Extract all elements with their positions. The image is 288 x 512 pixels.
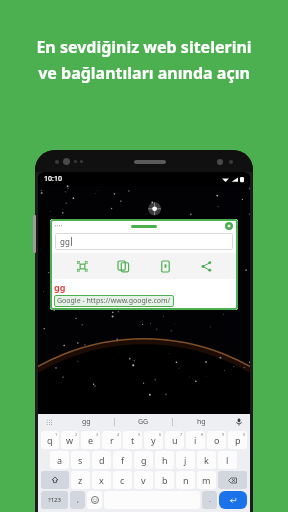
staticText: m: [202, 474, 211, 486]
staticText: gg: [54, 281, 66, 293]
staticText: y: [151, 434, 156, 446]
button[interactable]: h: [155, 451, 174, 469]
button[interactable]: hg: [173, 414, 230, 430]
staticText: u: [172, 434, 178, 446]
button[interactable]: z: [71, 471, 90, 489]
button[interactable]: m: [197, 471, 216, 489]
button[interactable]: gg: [55, 233, 233, 250]
staticText: v: [141, 474, 146, 486]
button[interactable]: QR code: [73, 257, 91, 275]
staticText: ve bağlantıları anında açın: [14, 62, 274, 84]
staticText: 5: [138, 432, 141, 437]
staticText: GG: [138, 417, 149, 427]
staticText: 8: [201, 432, 204, 437]
button[interactable]: Backspace: [218, 471, 247, 489]
button[interactable]: Enter: [219, 491, 247, 509]
staticText: g: [141, 454, 147, 466]
staticText: j: [184, 454, 187, 466]
staticText: e: [88, 434, 94, 446]
button[interactable]: c: [113, 471, 132, 489]
button[interactable]: s: [71, 451, 90, 469]
button[interactable]: v: [134, 471, 153, 489]
staticText: 4: [117, 432, 120, 437]
staticText: r: [110, 434, 114, 446]
staticText: 2: [75, 432, 78, 437]
staticText: t: [131, 434, 135, 446]
staticText: z: [78, 474, 83, 486]
staticText: f: [121, 454, 125, 466]
staticText: hg: [197, 417, 206, 427]
staticText: 9: [222, 432, 225, 437]
button[interactable]: w: [61, 431, 79, 449]
staticText: o: [214, 434, 220, 446]
staticText: c: [120, 474, 125, 486]
button[interactable]: ,: [70, 491, 85, 509]
button[interactable]: e: [81, 431, 100, 449]
button[interactable]: Save: [156, 257, 174, 275]
button[interactable]: y: [144, 431, 163, 449]
staticText: b: [162, 474, 168, 486]
button[interactable]: d: [92, 451, 111, 469]
staticText: k: [204, 454, 209, 466]
staticText: .: [209, 495, 211, 505]
button[interactable]: l: [218, 451, 237, 469]
staticText: gg: [60, 236, 70, 247]
staticText: 7: [180, 432, 183, 437]
staticText: ?123: [48, 496, 61, 504]
staticText: l: [226, 454, 229, 466]
button[interactable]: Voice input: [230, 414, 248, 430]
staticText: s: [78, 454, 83, 466]
button[interactable]: Shift: [41, 471, 69, 489]
staticText: p: [235, 434, 241, 446]
button[interactable]: n: [176, 471, 195, 489]
button[interactable]: b: [155, 471, 174, 489]
staticText: 1: [55, 432, 58, 437]
button[interactable]: q: [41, 431, 59, 449]
button[interactable]: r: [102, 431, 121, 449]
staticText: n: [183, 474, 189, 486]
button[interactable]: a: [50, 451, 69, 469]
button[interactable]: Emoji: [87, 491, 102, 509]
staticText: x: [99, 474, 104, 486]
staticText: 0: [243, 432, 246, 437]
button[interactable]: f: [113, 451, 132, 469]
staticText: h: [162, 454, 168, 466]
button[interactable]: t: [123, 431, 142, 449]
button[interactable]: Keyboard menu: [40, 414, 58, 430]
staticText: 3: [96, 432, 99, 437]
button[interactable]: Close: [225, 222, 233, 230]
staticText: i: [194, 434, 197, 446]
staticText: ,: [77, 495, 79, 505]
button[interactable]: .: [202, 491, 217, 509]
button[interactable]: ?123: [41, 491, 68, 509]
staticText: 10:10: [44, 174, 62, 184]
staticText: Google - https://www.google.com/: [57, 296, 171, 306]
staticText: En sevdiğiniz web sitelerini: [14, 36, 274, 58]
button[interactable]: k: [197, 451, 216, 469]
button[interactable]: Copy: [114, 257, 132, 275]
button[interactable]: o: [207, 431, 226, 449]
button[interactable]: Share: [197, 257, 215, 275]
staticText: w: [66, 434, 74, 446]
staticText: d: [99, 454, 105, 466]
staticText: 6: [159, 432, 162, 437]
staticText: q: [47, 434, 53, 446]
button[interactable]: x: [92, 471, 111, 489]
button[interactable]: gg: [58, 414, 114, 430]
button[interactable]: i: [186, 431, 205, 449]
button[interactable]: u: [165, 431, 184, 449]
button[interactable]: j: [176, 451, 195, 469]
button[interactable]: Google - https://www.google.com/: [54, 295, 174, 307]
staticText: a: [57, 454, 63, 466]
button[interactable]: g: [134, 451, 153, 469]
button[interactable]: GG: [115, 414, 172, 430]
staticText: gg: [82, 417, 91, 427]
button[interactable]: p: [228, 431, 247, 449]
